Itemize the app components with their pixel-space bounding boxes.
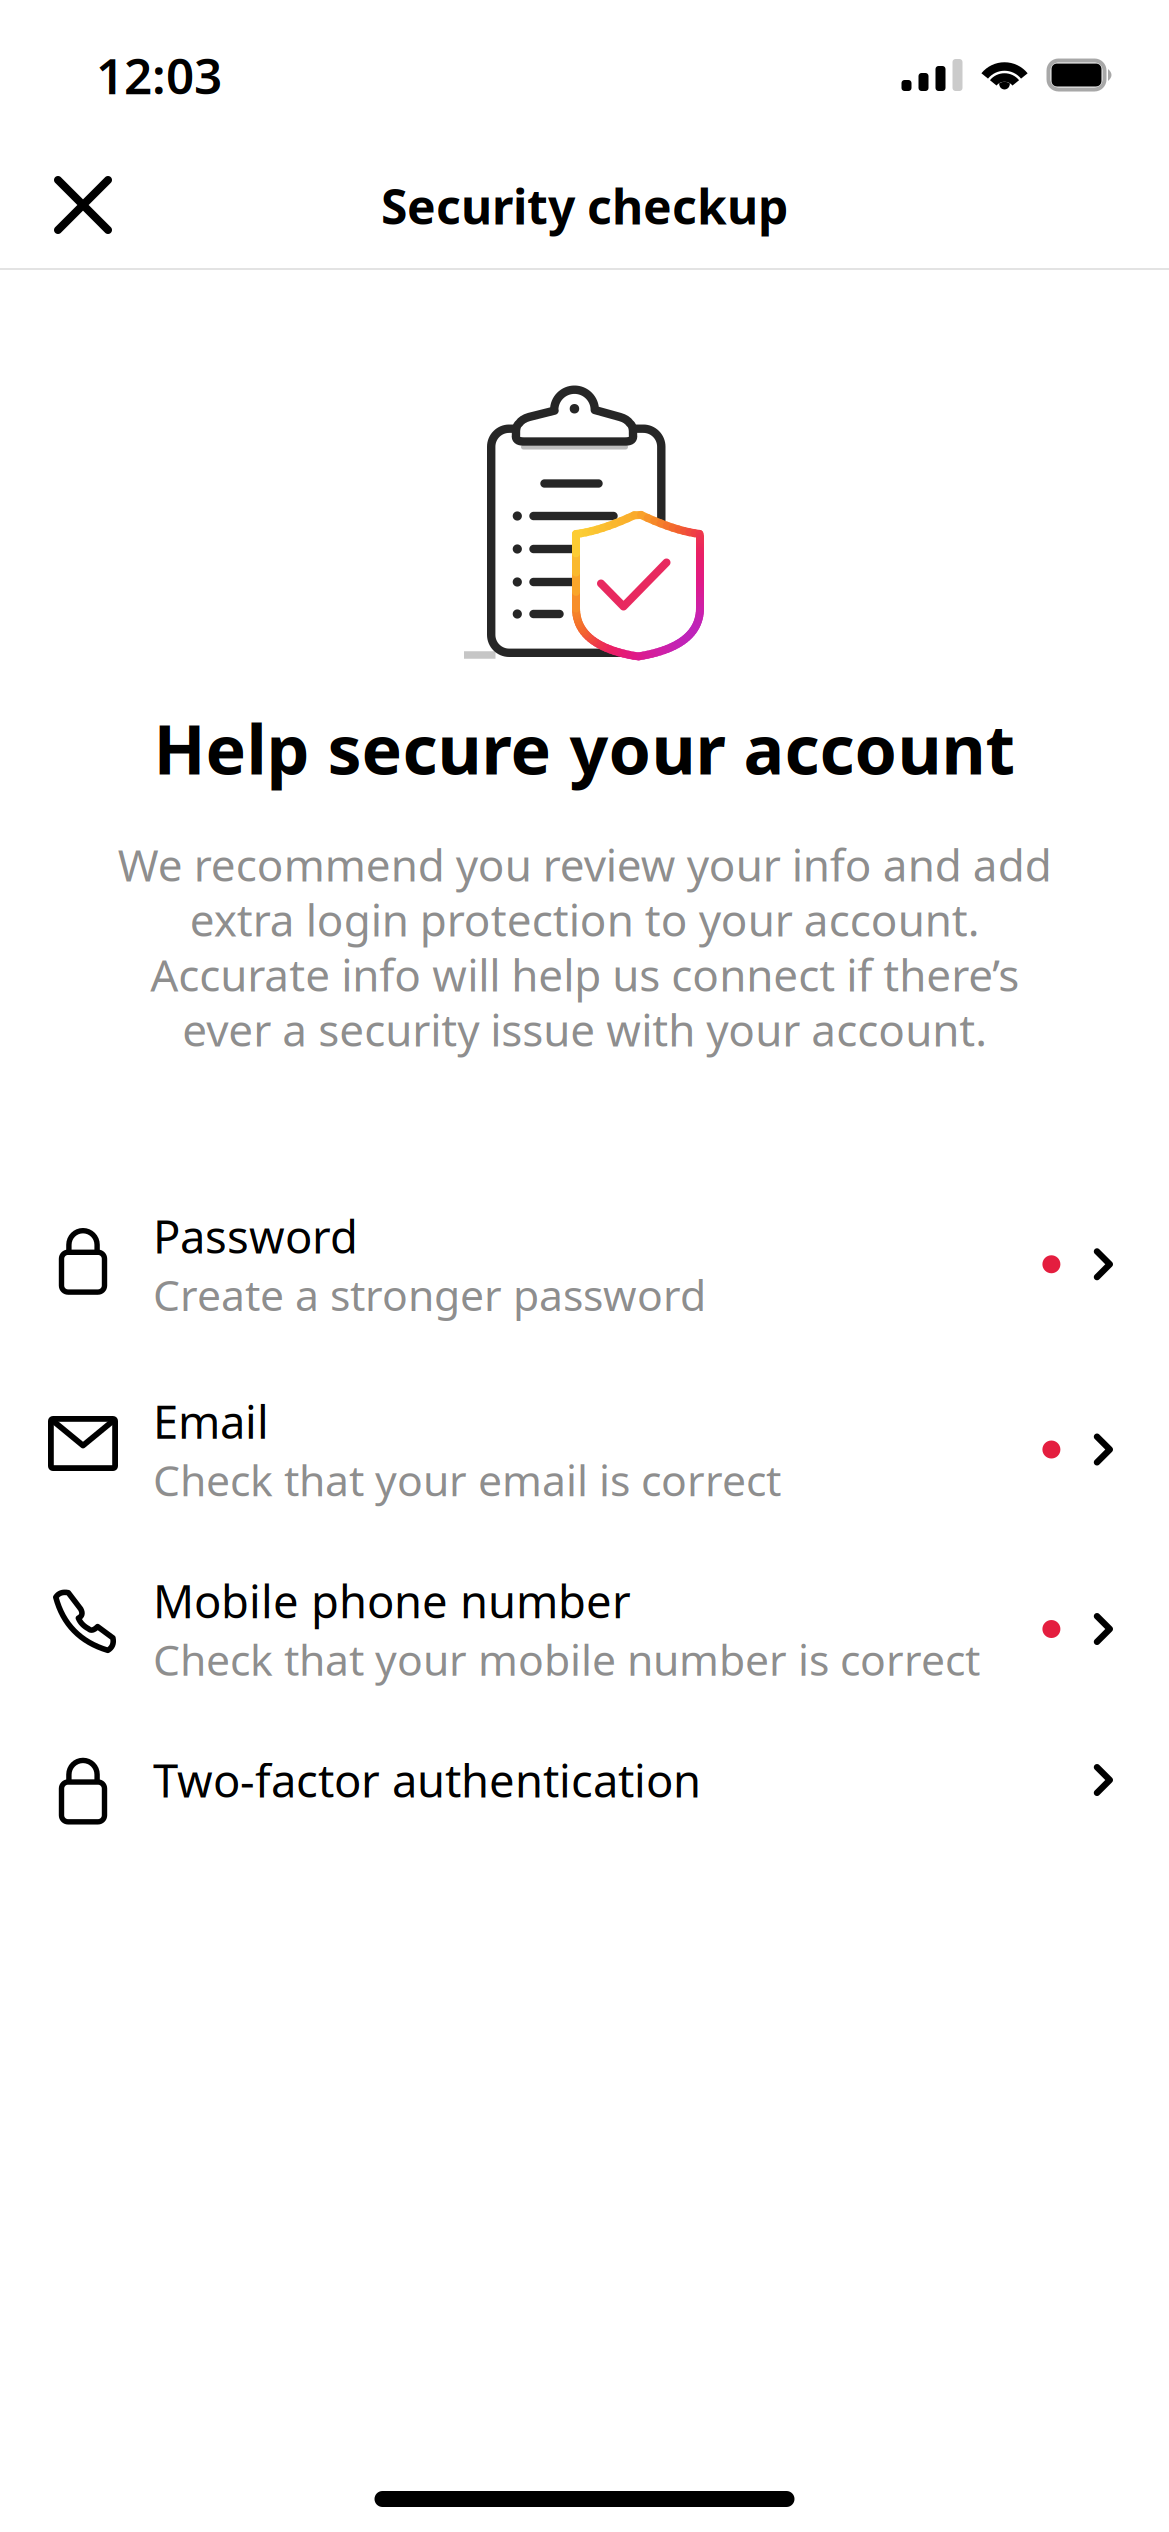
staticText: Check that your mobile number is correct — [153, 1631, 980, 1687]
button[interactable]: Mobile phone number — [0, 1540, 1169, 1718]
button[interactable]: Two-factor authentication — [0, 1718, 1169, 1842]
staticText: 12:03 — [96, 42, 222, 108]
staticText: Help secure your account — [153, 703, 1015, 793]
staticText: Mobile phone number — [153, 1571, 631, 1631]
button[interactable]: Email — [0, 1359, 1169, 1540]
staticText: Email — [153, 1391, 269, 1451]
button[interactable]: Password — [0, 1169, 1169, 1359]
staticText: Security checkup — [381, 174, 788, 238]
staticText: We recommend you review your info and ad… — [117, 835, 1051, 1058]
staticText: Create a stronger password — [153, 1266, 706, 1323]
staticText: Check that your email is correct — [153, 1451, 781, 1508]
staticText: Two-factor authentication — [153, 1750, 701, 1810]
staticText: Password — [153, 1206, 358, 1266]
button[interactable]: Close — [28, 154, 138, 256]
